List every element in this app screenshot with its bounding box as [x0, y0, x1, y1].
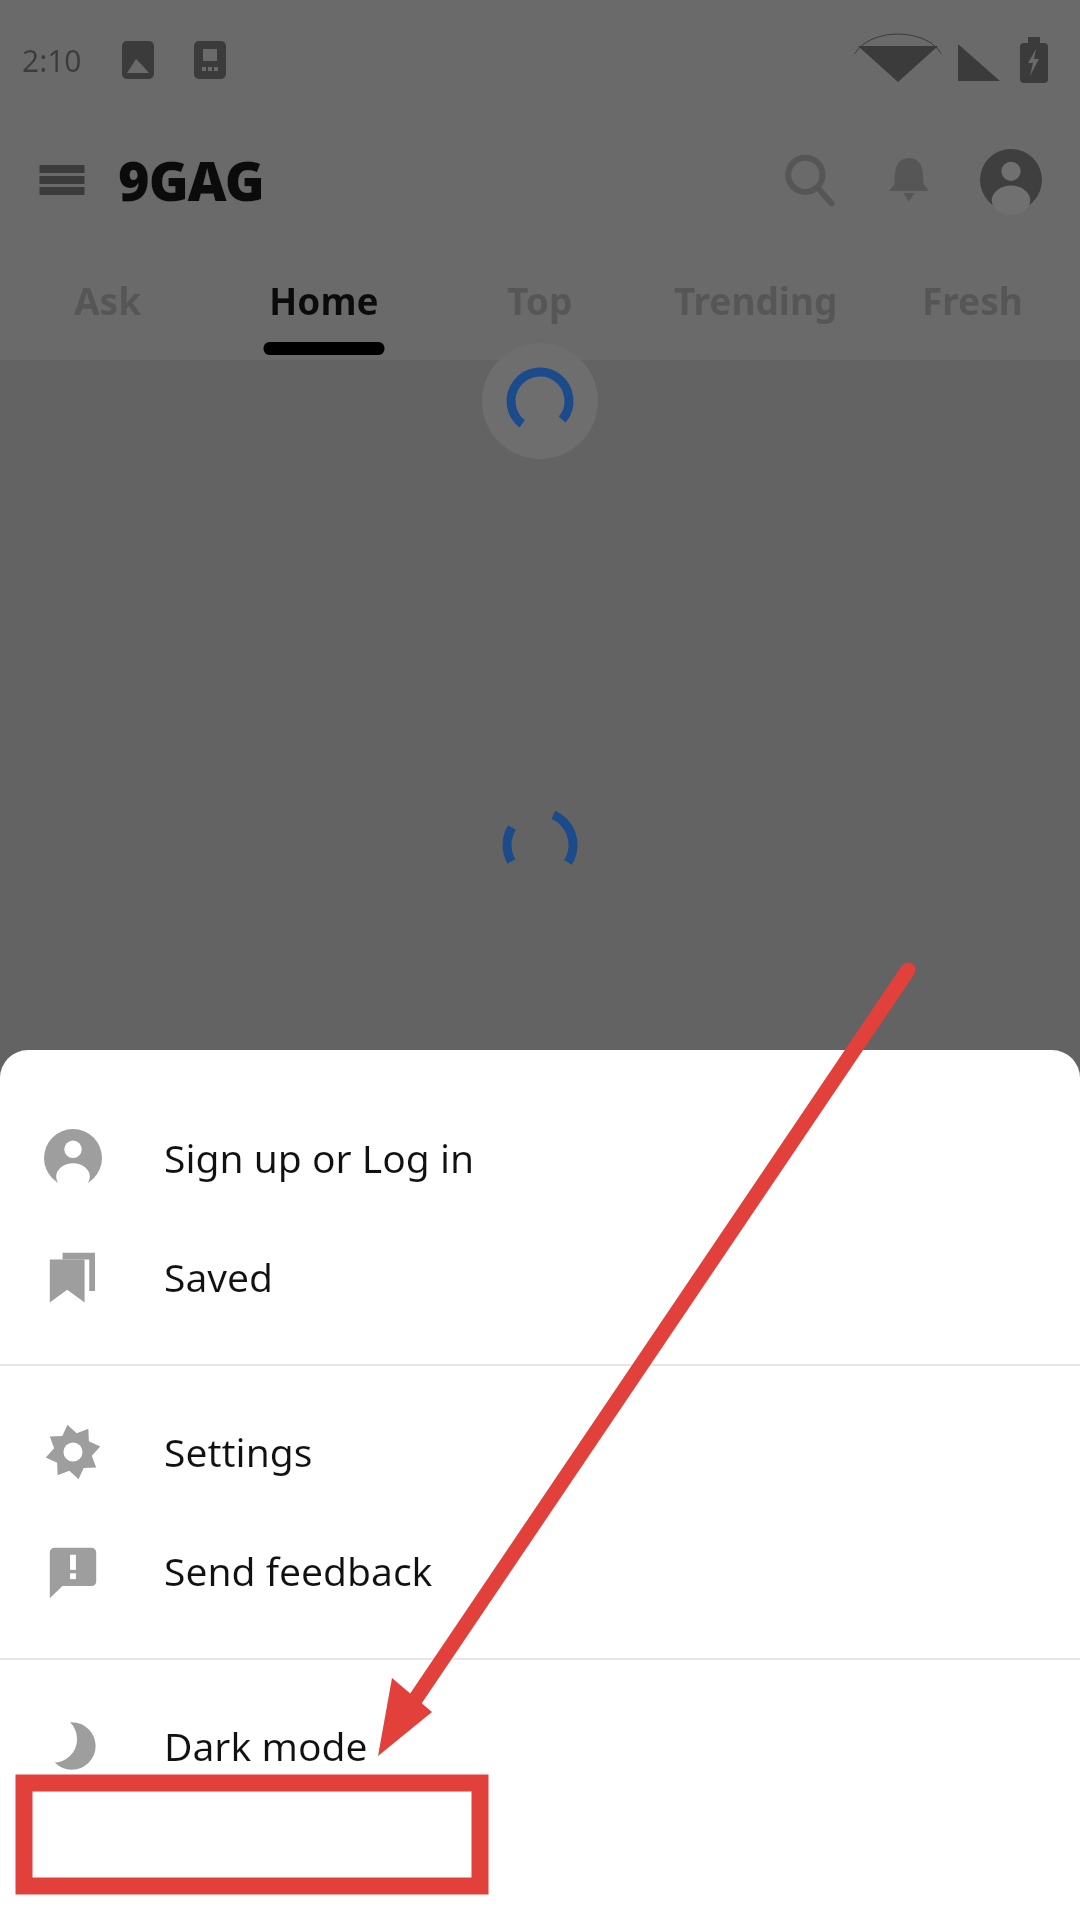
button[interactable]: Fresh [864, 240, 1080, 360]
staticText: Dark mode [164, 1719, 368, 1772]
button[interactable]: Ask [0, 240, 216, 360]
button[interactable]: Settings [0, 1392, 1080, 1511]
button[interactable]: Account [972, 141, 1050, 219]
button[interactable]: Top [432, 240, 648, 360]
staticText: Trending [674, 275, 838, 325]
staticText: Saved [164, 1250, 274, 1303]
button[interactable]: Dark mode [0, 1686, 1080, 1805]
button[interactable]: Trending [648, 240, 864, 360]
staticText: Top [507, 275, 573, 325]
button[interactable]: Search [772, 143, 846, 217]
button[interactable]: Sign up or Log in [0, 1098, 1080, 1217]
staticText: Settings [164, 1425, 313, 1478]
staticText: 2:10 [22, 40, 82, 81]
staticText: Ask [74, 275, 142, 325]
button[interactable]: Saved [0, 1217, 1080, 1336]
button[interactable]: Menu [30, 148, 94, 212]
button[interactable]: Send feedback [0, 1511, 1080, 1630]
staticText: Home [269, 275, 379, 325]
button[interactable]: Home [216, 240, 432, 360]
button[interactable]: 9GAG [118, 143, 264, 217]
button[interactable]: Notifications [872, 143, 946, 217]
staticText: Sign up or Log in [164, 1131, 475, 1184]
staticText: Send feedback [164, 1544, 433, 1597]
staticText: Fresh [922, 275, 1023, 325]
